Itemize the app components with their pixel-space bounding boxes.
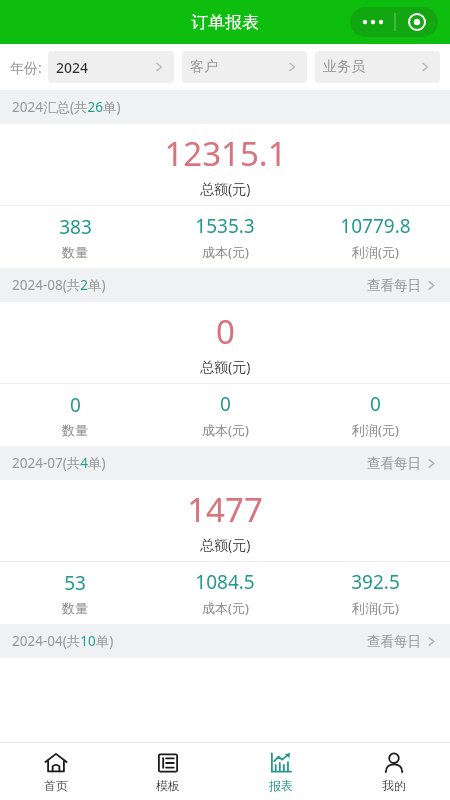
staticText: 我的 (382, 778, 406, 793)
staticText: 成本(元) (202, 599, 249, 617)
staticText: 年份: (10, 58, 42, 77)
staticText: 0 (216, 309, 235, 354)
staticText: 1477 (187, 487, 263, 532)
staticText: 1084.5 (195, 569, 255, 595)
staticText: 0 (370, 391, 381, 417)
staticText: 数量 (62, 244, 88, 260)
button[interactable]: 2024-04(共10单) (0, 624, 450, 658)
staticText: 数量 (62, 600, 88, 616)
button[interactable]: 我的 (337, 751, 450, 793)
staticText: 模板 (156, 778, 180, 793)
staticText: 392.5 (351, 569, 400, 595)
staticText: 成本(元) (202, 421, 249, 439)
staticText: 0 (70, 392, 81, 418)
button[interactable]: 2024-08(共2单) (0, 268, 450, 302)
staticText: 业务员 (323, 58, 418, 76)
staticText: 383 (59, 214, 92, 240)
staticText: 查看每日 (367, 633, 421, 650)
staticText: 总额(元) (200, 179, 251, 198)
staticText: 利润(元) (352, 599, 399, 617)
staticText: 订单报表 (191, 12, 259, 33)
staticText: 2024汇总(共26单) (12, 98, 121, 116)
staticText: 报表 (269, 778, 293, 793)
button[interactable]: 2024 (48, 51, 174, 83)
staticText: 利润(元) (352, 421, 399, 439)
staticText: 10779.8 (340, 213, 411, 239)
staticText: 0 (220, 391, 231, 417)
button[interactable]: 2024汇总(共26单) (0, 90, 450, 124)
staticText: 客户 (190, 58, 285, 76)
staticText: 查看每日 (367, 277, 421, 294)
staticText: 2024 (56, 58, 152, 77)
button[interactable]: 2024-07(共4单) (0, 446, 450, 480)
button[interactable]: 首页 (0, 751, 112, 793)
staticText: 1535.3 (195, 213, 255, 239)
staticText: 总额(元) (200, 535, 251, 554)
button[interactable]: 客户 (182, 51, 307, 83)
staticText: 查看每日 (367, 455, 421, 472)
staticText: 53 (64, 570, 86, 596)
staticText: 总额(元) (200, 357, 251, 376)
staticText: 2024-04(共10单) (12, 632, 114, 650)
button[interactable]: More and close (350, 7, 438, 37)
staticText: 利润(元) (352, 243, 399, 261)
staticText: 数量 (62, 422, 88, 438)
staticText: 首页 (44, 778, 68, 793)
staticText: 2024-08(共2单) (12, 276, 106, 294)
button[interactable]: 报表 (224, 751, 337, 793)
button[interactable]: 业务员 (315, 51, 440, 83)
staticText: 成本(元) (202, 243, 249, 261)
staticText: 2024-07(共4单) (12, 454, 106, 472)
button[interactable]: 模板 (112, 751, 224, 793)
staticText: 12315.1 (164, 131, 287, 176)
